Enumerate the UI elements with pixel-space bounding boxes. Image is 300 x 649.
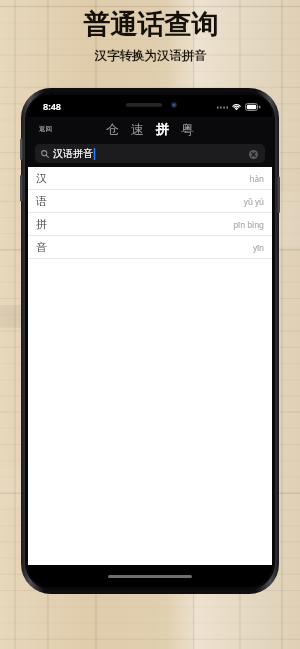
staticText: 拼 [156, 121, 169, 137]
staticText: 速 [131, 121, 144, 137]
button[interactable]: 音 [28, 236, 272, 258]
staticText: 8:48 [43, 100, 61, 112]
button[interactable]: 仓 [100, 120, 125, 138]
button[interactable]: 汉 [28, 167, 272, 189]
staticText: 汉字转换为汉语拼音 [94, 48, 207, 64]
staticText: 普通话查询 [83, 8, 218, 42]
button[interactable]: 返回 [36, 122, 55, 136]
button[interactable]: 拼 [150, 120, 175, 138]
staticText: 仓 [106, 121, 119, 137]
staticText: pīn bìng [233, 219, 264, 230]
staticText: 音 [36, 240, 47, 254]
button[interactable]: 速 [125, 120, 150, 138]
staticText: 拼 [36, 217, 47, 231]
staticText: 语 [36, 194, 47, 208]
staticText: yǔ yù [243, 196, 264, 207]
button[interactable]: 粤 [175, 120, 200, 138]
staticText: hàn [249, 173, 264, 184]
button[interactable]: 汉语拼音 [35, 144, 265, 163]
button[interactable]: Clear text [247, 148, 259, 160]
button[interactable]: 语 [28, 190, 272, 212]
staticText: 汉 [36, 171, 47, 185]
button[interactable]: 拼 [28, 213, 272, 235]
staticText: yīn [252, 242, 264, 253]
staticText: 粤 [181, 121, 194, 137]
staticText: 汉语拼音 [53, 147, 93, 160]
staticText: 返回 [39, 125, 52, 133]
